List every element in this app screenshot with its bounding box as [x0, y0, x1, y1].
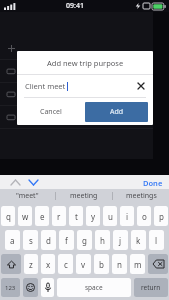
button[interactable]: z — [24, 254, 38, 274]
button[interactable]: 123 — [1, 278, 20, 297]
button[interactable]: Backspace — [148, 254, 168, 274]
button[interactable]: Tookoosolek — [0, 60, 169, 82]
staticText: r — [57, 211, 61, 222]
button[interactable]: Next field — [26, 176, 40, 188]
staticText: Cancel — [40, 107, 62, 117]
button[interactable]: Emoji — [23, 278, 38, 297]
button[interactable]: Shift — [1, 254, 21, 274]
staticText: n — [117, 259, 122, 270]
button[interactable]: c — [58, 254, 73, 274]
button[interactable]: Previous field — [8, 176, 22, 188]
staticText: q — [6, 211, 11, 222]
staticText: Client meet — [25, 81, 66, 91]
staticText: Add new trip purpose — [47, 58, 124, 68]
button[interactable]: p — [154, 206, 168, 226]
button[interactable]: g — [77, 230, 92, 250]
button[interactable]: f — [59, 230, 74, 250]
button[interactable]: meeting — [56, 189, 112, 203]
button[interactable]: w — [18, 206, 32, 226]
staticText: a — [10, 235, 15, 246]
staticText: c — [64, 259, 68, 270]
staticText: 123 — [5, 284, 16, 292]
button[interactable]: e — [35, 206, 49, 226]
staticText: Add — [110, 107, 124, 117]
button[interactable]: y — [86, 206, 100, 226]
staticText: s — [29, 235, 33, 246]
button[interactable]: Koolitus — [0, 83, 169, 105]
button[interactable]: r — [52, 206, 66, 226]
button[interactable]: Client meet — [17, 75, 153, 97]
button[interactable]: x — [41, 254, 55, 274]
button[interactable]: o — [137, 206, 151, 226]
button[interactable]: return — [134, 278, 168, 297]
staticText: g — [82, 235, 87, 246]
button[interactable]: j — [113, 230, 128, 250]
button[interactable]: q — [1, 206, 15, 226]
staticText: z — [29, 259, 33, 270]
button[interactable]: h — [95, 230, 110, 250]
staticText: v — [81, 259, 86, 270]
staticText: o — [142, 211, 147, 222]
button[interactable]: "meet" — [0, 189, 55, 203]
staticText: x — [46, 259, 51, 270]
button[interactable]: n — [112, 254, 127, 274]
button[interactable]: t — [69, 206, 83, 226]
staticText: p — [159, 211, 164, 222]
button[interactable]: m — [130, 254, 145, 274]
staticText: f — [65, 235, 68, 246]
button[interactable]: i — [120, 206, 134, 226]
staticText: meeting — [70, 191, 98, 201]
button[interactable]: Pangas klik — [0, 106, 169, 128]
button[interactable]: space — [57, 278, 131, 297]
staticText: Koolitus — [23, 89, 50, 99]
staticText: space — [85, 283, 103, 292]
button[interactable]: Clear text — [135, 80, 147, 92]
staticText: d — [46, 235, 51, 246]
staticText: y — [91, 211, 96, 222]
button[interactable]: s — [23, 230, 38, 250]
staticText: w — [22, 211, 29, 222]
staticText: 09:41 — [66, 1, 84, 11]
staticText: j — [119, 235, 122, 246]
button[interactable]: u — [103, 206, 117, 226]
button[interactable]: b — [94, 254, 109, 274]
staticText: return — [141, 283, 161, 292]
button[interactable]: a — [5, 230, 20, 250]
button[interactable]: v — [76, 254, 91, 274]
staticText: m — [134, 259, 142, 270]
staticText: "meet" — [16, 191, 39, 201]
staticText: t — [75, 211, 78, 222]
staticText: i — [126, 211, 129, 222]
staticText: e — [40, 211, 45, 222]
button[interactable]: meetings — [113, 189, 169, 203]
button[interactable]: Done — [137, 176, 169, 189]
button[interactable]: d — [41, 230, 56, 250]
staticText: meetings — [126, 191, 157, 201]
staticText: b — [99, 259, 104, 270]
staticText: Tookoosolek — [23, 66, 65, 76]
button[interactable] — [0, 37, 169, 59]
staticText: Done — [143, 178, 163, 188]
button[interactable]: Cancel — [17, 102, 85, 122]
button[interactable]: l — [149, 230, 164, 250]
staticText: k — [136, 235, 141, 246]
staticText: h — [100, 235, 105, 246]
staticText: u — [108, 211, 113, 222]
staticText: l — [155, 235, 158, 246]
button[interactable]: Dictate — [41, 278, 54, 297]
button[interactable]: k — [131, 230, 146, 250]
staticText: Pangas klik — [23, 112, 60, 122]
button[interactable]: Add — [85, 102, 148, 122]
